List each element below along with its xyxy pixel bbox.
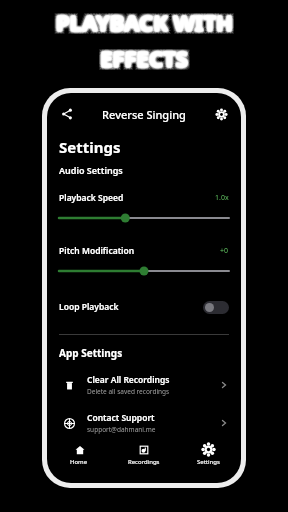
staticText: App Settings <box>59 346 123 360</box>
button[interactable]: Settings <box>176 443 241 477</box>
button[interactable]: Home <box>47 443 111 477</box>
staticText: EFFECTS <box>98 43 186 73</box>
staticText: EFFECTS <box>100 45 188 75</box>
staticText: PLAYBACK WITH <box>54 9 231 39</box>
staticText: Audio Settings <box>59 164 123 176</box>
staticText: EFFECTS <box>99 42 187 72</box>
staticText: EFFECTS <box>102 43 190 73</box>
button[interactable] <box>59 266 229 276</box>
staticText: Recordings <box>128 458 160 466</box>
staticText: EFFECTS <box>101 44 189 74</box>
staticText: Clear All Recordings <box>87 374 170 386</box>
staticText: PLAYBACK WITH <box>55 7 232 37</box>
staticText: EFFECTS <box>97 40 185 70</box>
staticText: +0 <box>220 246 229 256</box>
staticText: EFFECTS <box>99 43 187 73</box>
staticText: EFFECTS <box>97 46 185 76</box>
staticText: PLAYBACK WITH <box>56 4 233 34</box>
staticText: Pitch Modification <box>59 245 220 257</box>
staticText: Playback Speed <box>59 192 215 204</box>
staticText: PLAYBACK WITH <box>53 4 230 34</box>
staticText: PLAYBACK WITH <box>59 4 236 34</box>
staticText: Settings <box>197 458 220 466</box>
staticText: PLAYBACK WITH <box>56 9 233 39</box>
staticText: EFFECTS <box>101 43 189 73</box>
staticText: EFFECTS <box>97 43 185 73</box>
staticText: PLAYBACK WITH <box>57 8 234 38</box>
staticText: EFFECTS <box>103 43 191 73</box>
staticText: PLAYBACK WITH <box>58 7 235 37</box>
staticText: PLAYBACK WITH <box>59 10 236 40</box>
staticText: 1.0x <box>215 193 229 203</box>
button[interactable]: Settings <box>211 104 231 124</box>
staticText: EFFECTS <box>100 42 188 72</box>
staticText: Contact Support <box>87 412 155 424</box>
staticText: EFFECTS <box>100 40 188 70</box>
staticText: PLAYBACK WITH <box>57 6 234 36</box>
staticText: PLAYBACK WITH <box>53 7 230 37</box>
staticText: PLAYBACK WITH <box>56 6 233 36</box>
staticText: EFFECTS <box>103 40 191 70</box>
staticText: Home <box>70 458 88 466</box>
staticText: PLAYBACK WITH <box>55 8 232 38</box>
staticText: Loop Playback <box>59 301 203 313</box>
staticText: EFFECTS <box>100 46 188 76</box>
staticText: PLAYBACK WITH <box>56 5 233 35</box>
staticText: EFFECTS <box>102 45 190 75</box>
staticText: EFFECTS <box>103 46 191 76</box>
staticText: EFFECTS <box>100 41 188 71</box>
button[interactable] <box>59 213 229 223</box>
staticText: PLAYBACK WITH <box>56 7 233 37</box>
staticText: PLAYBACK WITH <box>58 9 235 39</box>
staticText: PLAYBACK WITH <box>56 10 233 40</box>
staticText: EFFECTS <box>99 44 187 74</box>
button[interactable]: Loop Playback <box>59 296 229 318</box>
staticText: Settings <box>59 137 121 157</box>
staticText: EFFECTS <box>100 44 188 74</box>
staticText: PLAYBACK WITH <box>58 5 235 35</box>
button[interactable]: Clear All Recordings <box>59 372 229 398</box>
staticText: support@dahmani.me <box>87 425 156 434</box>
staticText: PLAYBACK WITH <box>53 10 230 40</box>
staticText: EFFECTS <box>101 42 189 72</box>
staticText: Delete all saved recordings <box>87 387 170 396</box>
staticText: PLAYBACK WITH <box>54 7 231 37</box>
staticText: PLAYBACK WITH <box>54 5 231 35</box>
staticText: EFFECTS <box>102 41 190 71</box>
button[interactable]: Contact Support <box>59 410 229 436</box>
button[interactable]: Recordings <box>111 443 176 477</box>
staticText: EFFECTS <box>100 43 188 73</box>
staticText: PLAYBACK WITH <box>55 6 232 36</box>
staticText: EFFECTS <box>98 45 186 75</box>
staticText: PLAYBACK WITH <box>56 8 233 38</box>
button[interactable]: Share <box>57 104 77 124</box>
staticText: PLAYBACK WITH <box>59 7 236 37</box>
staticText: EFFECTS <box>98 41 186 71</box>
staticText: PLAYBACK WITH <box>57 7 234 37</box>
staticText: Reverse Singing <box>77 107 211 122</box>
